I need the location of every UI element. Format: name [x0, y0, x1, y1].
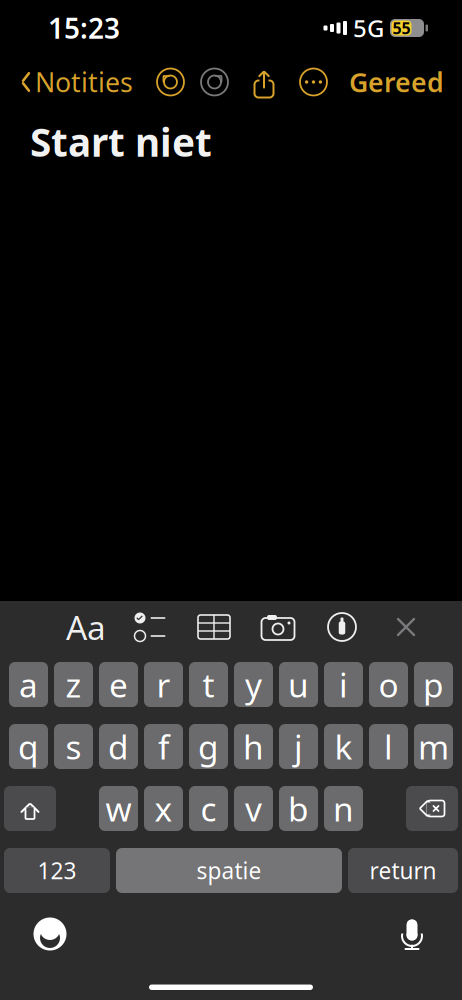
staticText: d [108, 724, 129, 769]
staticText: s [65, 724, 81, 769]
button[interactable]: g [189, 724, 228, 769]
staticText: Notities [35, 64, 133, 100]
button[interactable]: Share [242, 59, 286, 105]
staticText: z [65, 662, 81, 707]
button[interactable]: l [369, 724, 408, 769]
button[interactable]: Delete [406, 786, 458, 831]
staticText: 55 [392, 17, 410, 39]
staticText: 15:23 [48, 9, 120, 47]
button[interactable]: q [9, 724, 48, 769]
button[interactable]: e [99, 662, 138, 707]
staticText: u [288, 662, 309, 707]
staticText: b [288, 786, 309, 831]
button[interactable]: r [144, 662, 183, 707]
button[interactable]: Redo [192, 59, 236, 105]
button[interactable]: w [99, 786, 138, 831]
button[interactable]: a [9, 662, 48, 707]
button[interactable]: return [348, 848, 458, 893]
staticText: 123 [37, 855, 76, 885]
button[interactable]: Gereed [341, 59, 452, 105]
staticText: spatie [196, 855, 261, 885]
button[interactable]: b [279, 786, 318, 831]
button[interactable]: Dictation [384, 911, 440, 957]
button[interactable]: i [324, 662, 363, 707]
staticText: h [243, 724, 264, 769]
staticText: q [18, 724, 39, 769]
staticText: e [109, 662, 128, 707]
staticText: l [384, 724, 393, 769]
button[interactable]: h [234, 724, 273, 769]
staticText: p [423, 662, 444, 707]
button[interactable]: y [234, 662, 273, 707]
staticText: o [378, 662, 398, 707]
button[interactable]: n [324, 786, 363, 831]
button[interactable]: s [54, 724, 93, 769]
staticText: f [158, 724, 169, 769]
button[interactable]: f [144, 724, 183, 769]
staticText: k [334, 724, 352, 769]
staticText: y [245, 662, 262, 707]
button[interactable]: m [414, 724, 453, 769]
staticText: n [333, 786, 354, 831]
button[interactable]: Emoji [22, 911, 78, 957]
button[interactable]: 123 [4, 848, 110, 893]
button[interactable]: Shift [4, 786, 56, 831]
staticText: a [19, 662, 38, 707]
staticText: Gereed [349, 64, 444, 100]
staticText: m [418, 724, 449, 769]
button[interactable]: c [189, 786, 228, 831]
button[interactable]: Checklist [118, 601, 182, 653]
staticText: 5G [353, 12, 384, 44]
button[interactable]: Notities [10, 59, 143, 105]
button[interactable]: Close [374, 601, 438, 653]
button[interactable]: Camera [246, 601, 310, 653]
staticText: Aa [66, 605, 106, 649]
button[interactable]: Undo [148, 59, 192, 105]
staticText: i [339, 662, 348, 707]
button[interactable]: o [369, 662, 408, 707]
staticText: Start niet [30, 116, 212, 167]
button[interactable]: Markup [310, 601, 374, 653]
button[interactable]: Table [182, 601, 246, 653]
staticText: x [154, 786, 172, 831]
staticText: w [105, 786, 131, 831]
staticText: g [198, 724, 219, 769]
staticText: t [202, 662, 214, 707]
button[interactable]: z [54, 662, 93, 707]
button[interactable]: x [144, 786, 183, 831]
button[interactable]: t [189, 662, 228, 707]
staticText: c [200, 786, 216, 831]
button[interactable]: More [291, 59, 335, 105]
button[interactable]: k [324, 724, 363, 769]
staticText: return [369, 855, 436, 885]
button[interactable]: j [279, 724, 318, 769]
button[interactable]: v [234, 786, 273, 831]
button[interactable]: Text format [54, 601, 118, 653]
button[interactable]: p [414, 662, 453, 707]
staticText: j [294, 724, 303, 769]
staticText: v [245, 786, 262, 831]
staticText: r [156, 662, 170, 707]
button[interactable]: u [279, 662, 318, 707]
button[interactable]: spatie [116, 848, 342, 893]
button[interactable]: d [99, 724, 138, 769]
